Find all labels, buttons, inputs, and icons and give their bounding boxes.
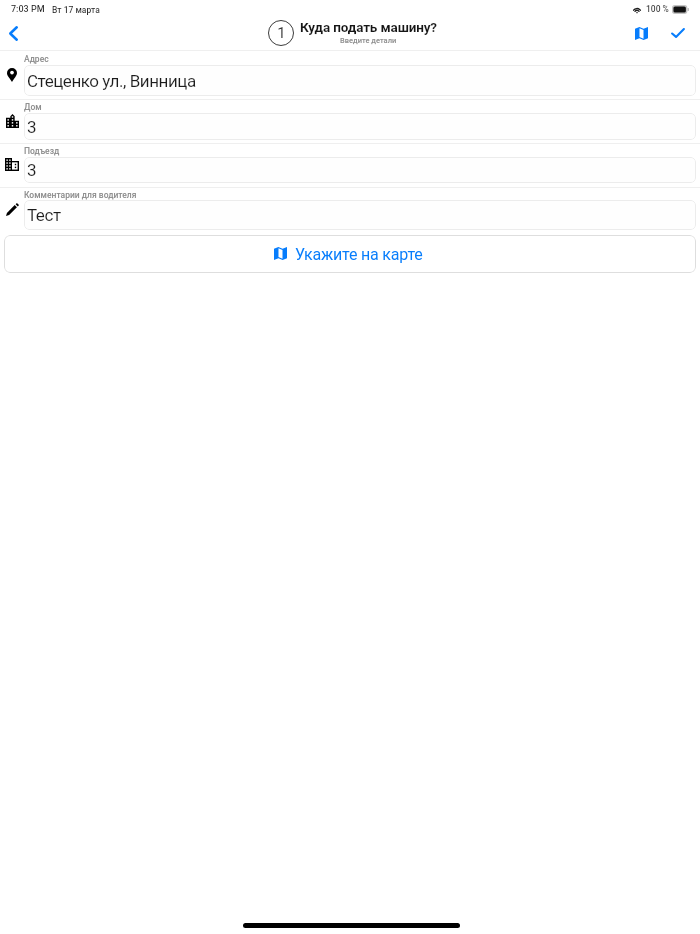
staticText: Введите детали xyxy=(340,36,397,45)
staticText: Тест xyxy=(27,205,61,225)
staticText: 3 xyxy=(27,160,37,180)
staticText: Комментарии для водителя xyxy=(24,190,137,200)
staticText: 1 xyxy=(277,24,286,42)
button[interactable]: 3 xyxy=(24,113,696,140)
button[interactable]: Готово xyxy=(662,16,693,50)
staticText: 3 xyxy=(27,117,37,137)
staticText: Дом xyxy=(24,102,42,112)
staticText: Подъезд xyxy=(24,146,60,156)
staticText: Стеценко ул., Винница xyxy=(27,71,196,91)
button[interactable]: Укажите на карте xyxy=(4,235,696,273)
button[interactable]: Назад xyxy=(0,16,27,50)
button[interactable]: 3 xyxy=(24,157,696,183)
staticText: Укажите на карте xyxy=(295,245,423,264)
button[interactable]: Показать на карте xyxy=(620,16,662,50)
staticText: 100 % xyxy=(646,4,669,14)
button[interactable]: Стеценко ул., Винница xyxy=(24,65,696,96)
staticText: Вт 17 марта xyxy=(52,5,100,15)
staticText: Куда подать машину? xyxy=(300,19,437,35)
staticText: 7:03 PM xyxy=(11,4,45,15)
staticText: Адрес xyxy=(24,54,49,64)
button[interactable]: Тест xyxy=(24,200,696,230)
